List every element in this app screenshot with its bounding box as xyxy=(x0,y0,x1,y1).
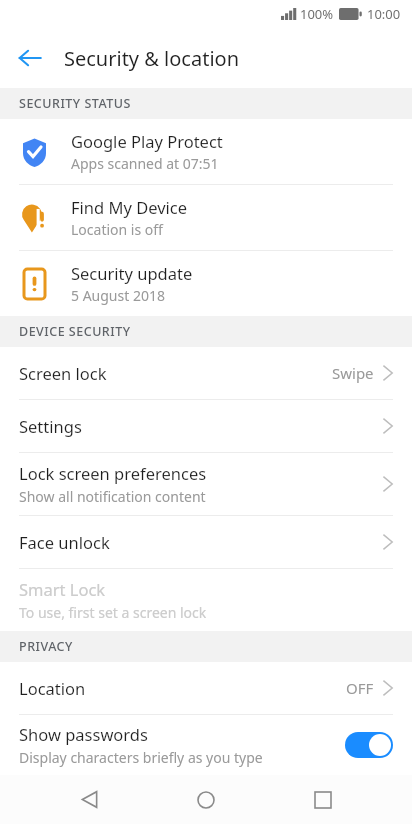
staticText: Apps scanned at 07:51 xyxy=(71,154,219,173)
staticText: Display characters briefly as you type xyxy=(19,748,263,767)
staticText: Show passwords xyxy=(19,723,148,745)
staticText: Google Play Protect xyxy=(71,130,223,152)
staticText: Screen lock xyxy=(19,362,107,384)
staticText: Swipe xyxy=(332,363,374,383)
staticText: Security update xyxy=(71,262,193,284)
button[interactable]: Security update xyxy=(0,251,412,316)
button[interactable]: Home xyxy=(178,775,234,824)
button[interactable]: Face unlock xyxy=(0,516,412,568)
staticText: Find My Device xyxy=(71,196,188,218)
button[interactable]: Location xyxy=(0,662,412,714)
button[interactable]: Screen lock xyxy=(0,347,412,399)
button[interactable]: Settings xyxy=(0,400,412,452)
staticText: Location is off xyxy=(71,220,163,239)
button[interactable]: Smart Lock xyxy=(0,569,412,631)
staticText: 10:00 xyxy=(367,5,401,23)
staticText: 5 August 2018 xyxy=(71,286,165,305)
staticText: DEVICE SECURITY xyxy=(19,323,131,340)
staticText: Settings xyxy=(19,415,82,437)
staticText: PRIVACY xyxy=(19,638,73,655)
button[interactable]: Back xyxy=(61,775,117,824)
staticText: Smart Lock xyxy=(19,578,106,600)
button[interactable]: Lock screen preferences xyxy=(0,453,412,515)
button[interactable]: Back xyxy=(8,36,52,80)
button[interactable]: Recent apps xyxy=(295,775,351,824)
staticText: To use, first set a screen lock xyxy=(19,603,207,622)
staticText: SECURITY STATUS xyxy=(19,95,131,112)
staticText: OFF xyxy=(346,678,374,698)
button[interactable]: Google Play Protect xyxy=(0,119,412,184)
button[interactable]: Show passwords xyxy=(0,715,412,775)
staticText: 100% xyxy=(300,5,334,23)
button[interactable]: Find My Device xyxy=(0,185,412,250)
staticText: Lock screen preferences xyxy=(19,462,207,484)
staticText: Security & location xyxy=(64,45,240,72)
staticText: Location xyxy=(19,677,86,699)
staticText: Show all notification content xyxy=(19,487,206,506)
staticText: Face unlock xyxy=(19,531,110,553)
button[interactable]: Show passwords toggle xyxy=(341,730,393,760)
